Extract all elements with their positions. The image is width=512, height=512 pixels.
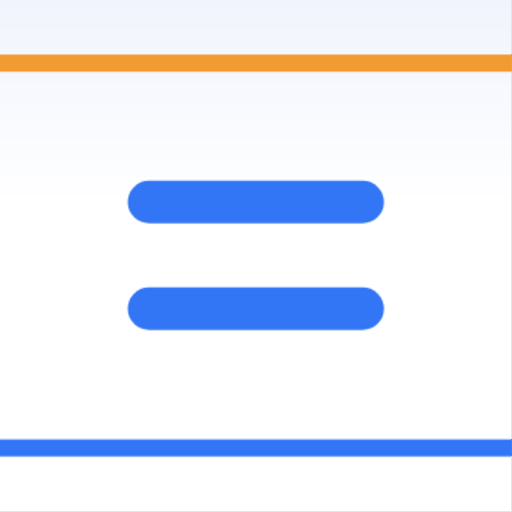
button[interactable]: Bottom bar xyxy=(0,439,512,456)
button[interactable]: Primary action xyxy=(127,180,383,223)
button[interactable]: Top bar xyxy=(0,54,512,71)
button[interactable]: Secondary action xyxy=(127,287,383,330)
